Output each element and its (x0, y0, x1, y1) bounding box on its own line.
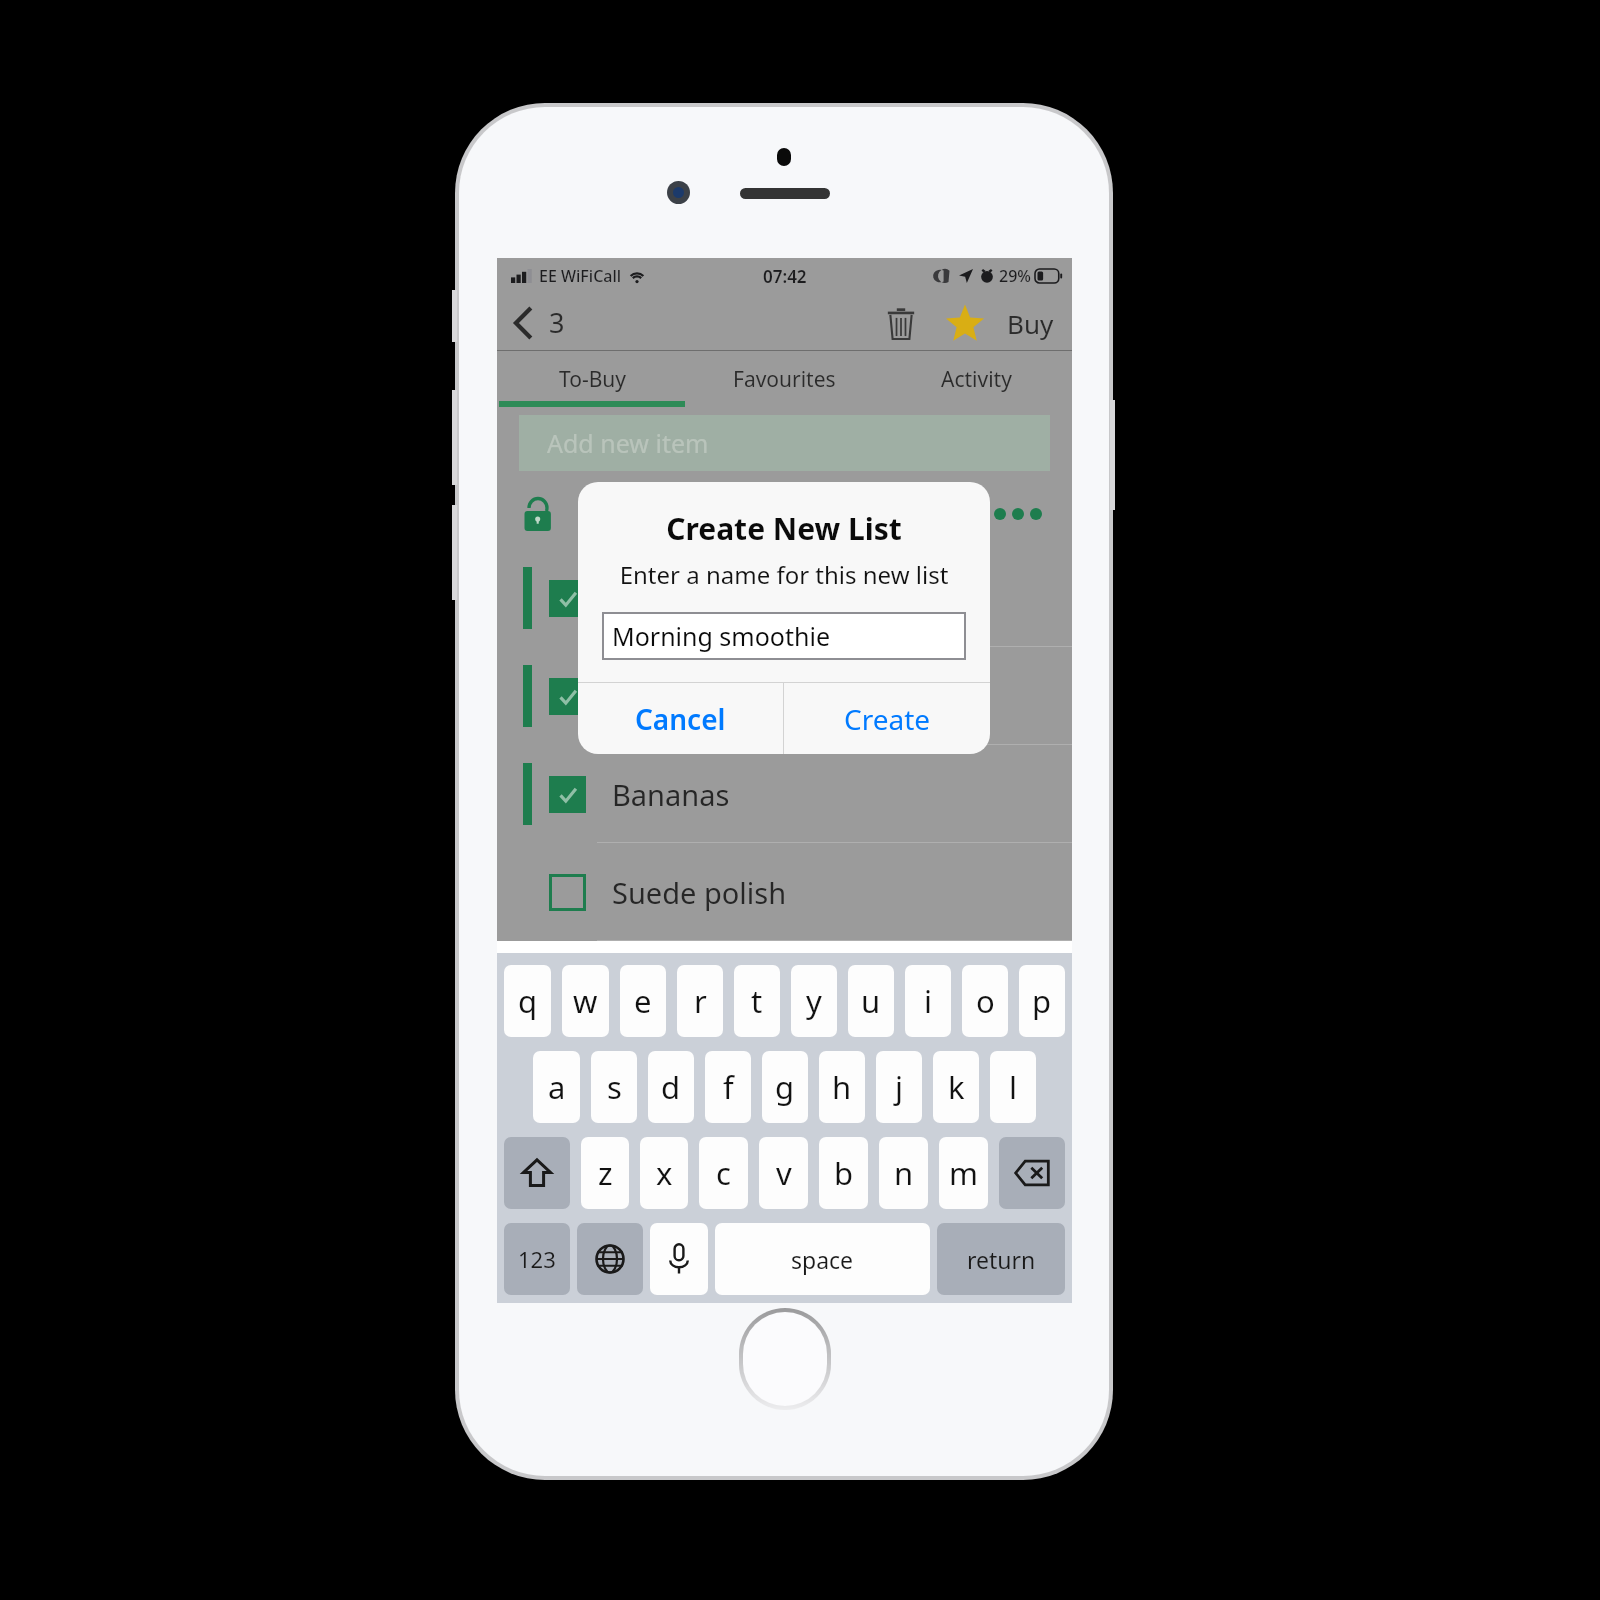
button[interactable]: u (848, 965, 894, 1037)
button[interactable]: Favourite (939, 297, 991, 349)
button[interactable]: c (699, 1137, 748, 1209)
button[interactable]: Add new item (519, 415, 1050, 471)
button[interactable]: Buy (1001, 298, 1060, 349)
button[interactable]: Home (743, 1312, 827, 1406)
button[interactable]: b (819, 1137, 868, 1209)
staticText: w (573, 980, 598, 1022)
staticText: Create (844, 700, 931, 738)
staticText: Suede polish (612, 873, 787, 912)
staticText: EE WiFiCall (539, 265, 622, 287)
button[interactable]: Avocado (497, 549, 1072, 647)
staticText: f (723, 1066, 734, 1108)
staticText: i (924, 980, 932, 1022)
button[interactable]: v (759, 1137, 808, 1209)
staticText: t (751, 980, 763, 1022)
button[interactable]: e (620, 965, 666, 1037)
button[interactable]: Change keyboard (577, 1223, 643, 1295)
button[interactable]: Morning smoothie (602, 612, 966, 660)
button[interactable]: Back (507, 296, 573, 349)
button[interactable]: z (581, 1137, 629, 1209)
staticText: x (656, 1152, 673, 1194)
staticText: 29% (999, 265, 1031, 287)
staticText: n (894, 1152, 914, 1194)
staticText: k (948, 1066, 965, 1108)
button[interactable]: n (879, 1137, 928, 1209)
button[interactable]: Create (784, 683, 990, 754)
staticText: e (634, 980, 652, 1022)
button[interactable]: a (533, 1051, 580, 1123)
button[interactable]: 123 (504, 1223, 570, 1295)
button[interactable]: More options (988, 502, 1048, 526)
staticText: Morning smoothie (612, 619, 830, 653)
button[interactable]: q (504, 965, 551, 1037)
staticText: Enter a name for this new list (578, 558, 990, 591)
staticText: 3 (549, 304, 565, 341)
button[interactable]: p (1019, 965, 1065, 1037)
staticText: To-Buy (559, 365, 627, 394)
button[interactable]: r (677, 965, 723, 1037)
button[interactable]: Cancel (578, 683, 783, 754)
button[interactable]: Activity (880, 351, 1072, 407)
button[interactable]: space (715, 1223, 930, 1295)
staticText: Buy (1007, 306, 1054, 341)
button[interactable]: To-Buy (497, 351, 688, 407)
button[interactable]: m (939, 1137, 988, 1209)
button[interactable]: Favourites (688, 351, 880, 407)
button[interactable]: d (648, 1051, 694, 1123)
staticText: c (716, 1152, 731, 1194)
staticText: a (548, 1066, 566, 1108)
staticText: d (661, 1066, 681, 1108)
button[interactable]: l (990, 1051, 1036, 1123)
button[interactable]: h (819, 1051, 865, 1123)
staticText: Create New List (578, 508, 990, 549)
staticText: q (518, 980, 538, 1022)
button[interactable]: k (933, 1051, 979, 1123)
other: Back (515, 308, 533, 338)
button[interactable]: o (962, 965, 1008, 1037)
staticText: p (1032, 980, 1052, 1022)
button[interactable]: Mangos (497, 647, 1072, 745)
staticText: g (775, 1066, 795, 1108)
button[interactable]: Dictation (650, 1223, 708, 1295)
staticText: o (976, 980, 995, 1022)
staticText: y (806, 980, 822, 1022)
button[interactable]: w (562, 965, 609, 1037)
staticText: 123 (518, 1244, 556, 1274)
button[interactable]: f (705, 1051, 751, 1123)
staticText: j (895, 1066, 903, 1108)
staticText: r (694, 980, 707, 1022)
staticText: 07:42 (763, 265, 807, 288)
staticText: z (598, 1152, 613, 1194)
button[interactable]: return (937, 1223, 1065, 1295)
staticText: Activity (941, 365, 1012, 394)
staticText: Add new item (547, 426, 709, 460)
staticText: space (791, 1244, 854, 1275)
staticText: l (1009, 1066, 1017, 1108)
staticText: v (776, 1152, 792, 1194)
staticText: h (832, 1066, 852, 1108)
button[interactable]: g (762, 1051, 808, 1123)
staticText: Mangos (612, 677, 722, 716)
button[interactable]: Lock list (523, 496, 553, 532)
button[interactable]: t (734, 965, 780, 1037)
button[interactable]: y (791, 965, 837, 1037)
button[interactable]: Delete (879, 299, 923, 348)
button[interactable]: Shift (504, 1137, 570, 1209)
staticText: Favourites (733, 365, 836, 394)
staticText: Avocado (612, 579, 729, 618)
staticText: return (967, 1244, 1036, 1275)
button[interactable]: Bananas (497, 745, 1072, 843)
button[interactable]: Backspace (999, 1137, 1065, 1209)
button[interactable]: j (876, 1051, 922, 1123)
staticText: s (607, 1066, 622, 1108)
staticText: Cancel (635, 700, 726, 738)
button[interactable]: x (640, 1137, 688, 1209)
staticText: u (861, 980, 881, 1022)
button[interactable]: Suede polish (497, 843, 1072, 941)
button[interactable]: s (591, 1051, 637, 1123)
staticText: Bananas (612, 775, 730, 814)
button[interactable]: i (905, 965, 951, 1037)
staticText: b (834, 1152, 854, 1194)
staticText: m (949, 1152, 978, 1194)
